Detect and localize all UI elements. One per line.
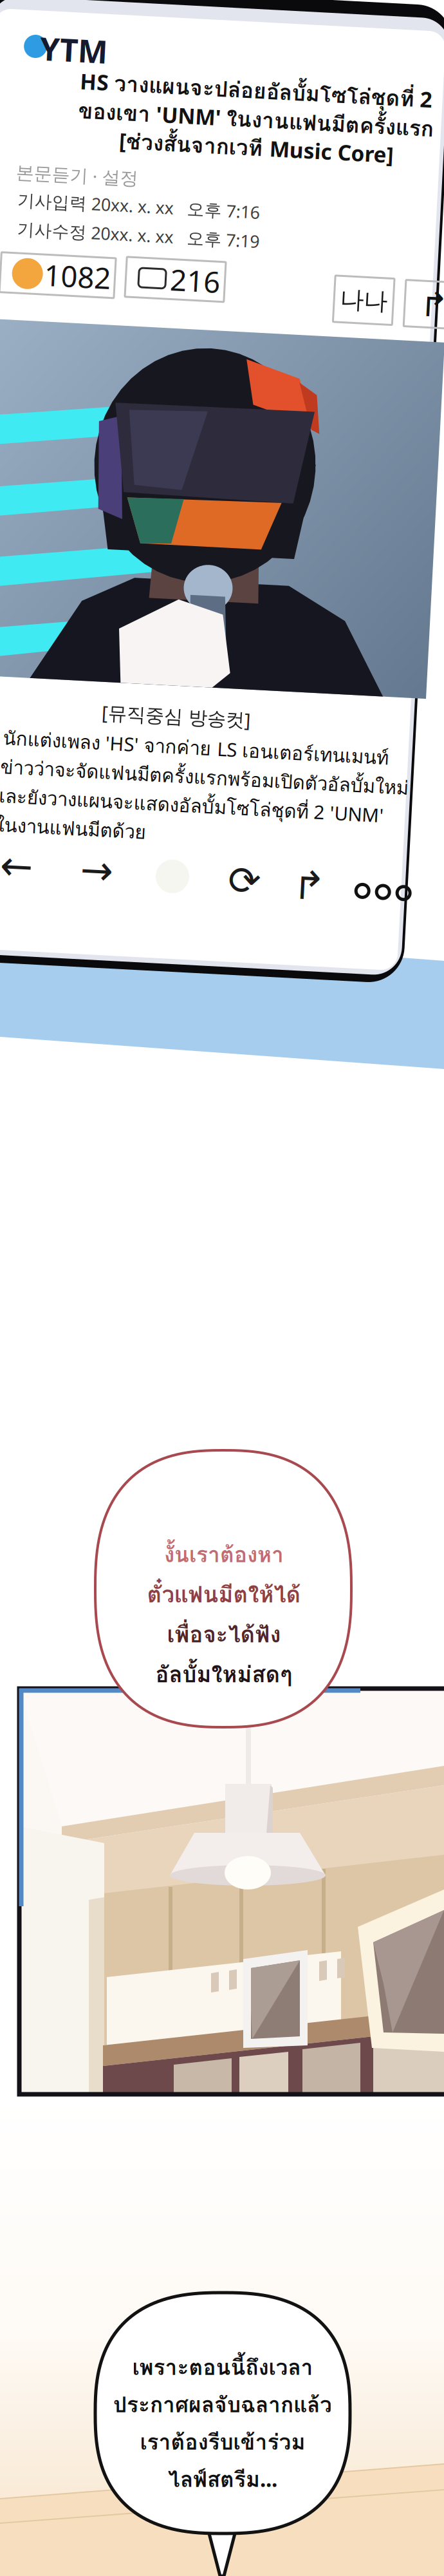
staticText: และยังวางแผนจะแสดงอัลบั้มโซโล่ชุดที่ 2 '… <box>36 780 427 809</box>
staticText: 기사수정 20xx. x. xx 오후 7:19 <box>31 216 273 239</box>
staticText: อัลบั้มใหม่สดๆ <box>155 1657 292 1692</box>
button[interactable]: Share <box>421 258 444 305</box>
staticText: เราต้องรีบเข้าร่วม <box>140 2425 305 2459</box>
staticText: งั้นเราต้องหา <box>164 1538 284 1571</box>
staticText: ↱ <box>340 846 373 891</box>
staticText: ในงานแฟนมีตด้วย <box>40 809 190 838</box>
staticText: มีข่าวว่าจะจัดแฟนมีตครั้งแรกพร้อมเปิดตัว… <box>30 751 444 780</box>
staticText: ประกาศผลจับฉลากแล้ว <box>113 2388 332 2421</box>
staticText: 기사입력 20xx. x. xx 오후 7:16 <box>29 187 272 210</box>
staticText: ตั๋วแฟนมีตให้ได้ <box>147 1577 301 1612</box>
staticText: 본문듣기 · 설정 <box>26 159 149 183</box>
staticText: ของเขา 'UNM' ในงานแฟนมีตครั้งแรก <box>85 90 441 123</box>
staticText: [ช่วงสั้นจากเวที Music Core] <box>128 118 402 151</box>
staticText: 나나 <box>356 266 404 296</box>
button[interactable]: 나나 <box>351 258 410 304</box>
button[interactable]: Back <box>34 838 92 890</box>
staticText: [뮤직중심 방송컷] <box>140 693 290 718</box>
staticText: YTM <box>44 25 112 67</box>
staticText: เพราะตอนนี้ถึงเวลา <box>132 2351 313 2384</box>
button[interactable]: 1082 <box>16 252 131 292</box>
staticText: 1082 <box>60 252 127 291</box>
staticText: ไลฟ์สตรีม... <box>168 2463 277 2496</box>
staticText: 216 <box>186 250 236 289</box>
button[interactable]: Share <box>328 842 385 894</box>
button[interactable]: Forward <box>115 838 172 890</box>
button[interactable]: 216 <box>142 250 241 290</box>
staticText: ↱ <box>437 262 444 301</box>
button[interactable]: Home <box>203 849 236 883</box>
staticText: ⟳ <box>275 844 308 889</box>
button[interactable]: More <box>398 845 444 896</box>
staticText: เพื่อจะได้ฟัง <box>167 1617 281 1652</box>
button[interactable]: Reload <box>263 841 320 893</box>
staticText: นักแต่งเพลง 'HS' จากค่าย LS เอนเตอร์เทนเ… <box>43 722 429 751</box>
staticText: HS วางแผนจะปล่อยอัลบั้มโซโล่ชุดที่ 2 <box>86 61 438 94</box>
